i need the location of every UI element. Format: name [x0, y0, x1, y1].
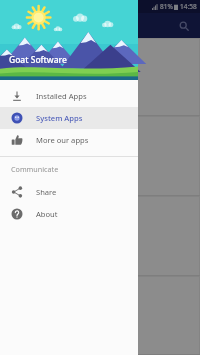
button[interactable]: More our apps: [0, 129, 138, 151]
button[interactable]: Installed Apps: [0, 85, 138, 107]
staticText: Goat Software: [9, 54, 67, 66]
button[interactable]: 1.7 MB: [0, 196, 200, 276]
button[interactable]: 22.1 MB: [0, 116, 200, 196]
button[interactable]: Search: [175, 17, 193, 35]
button[interactable]: Share: [0, 181, 138, 203]
staticText: 81%: [160, 2, 173, 11]
staticText: 14:58: [180, 2, 197, 11]
staticText: System Apps: [36, 113, 83, 123]
button[interactable]: 915 Kb: [0, 38, 200, 116]
button[interactable]: 5.3 MB: [0, 276, 200, 355]
staticText: Communicate: [11, 164, 59, 174]
button[interactable]: About: [0, 203, 138, 225]
staticText: About: [36, 209, 58, 219]
staticText: More our apps: [36, 135, 89, 145]
button[interactable]: System Apps: [0, 107, 138, 129]
staticText: Share: [36, 187, 57, 197]
staticText: Installed Apps: [36, 91, 87, 101]
